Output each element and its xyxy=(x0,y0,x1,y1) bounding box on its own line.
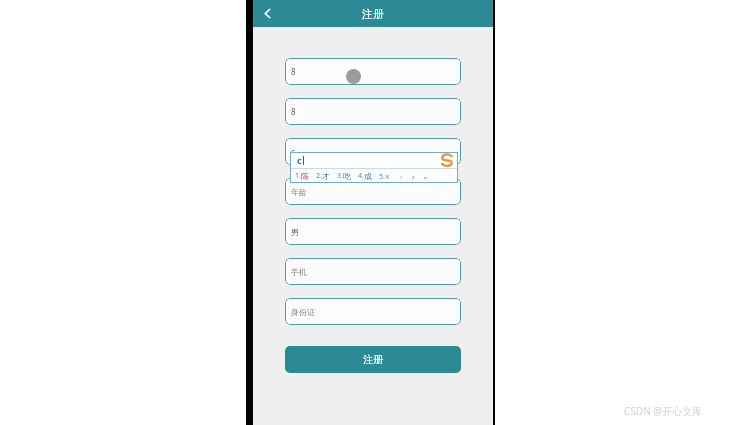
staticText: 8 xyxy=(291,66,296,77)
staticText: 1. xyxy=(295,171,301,181)
staticText: 5. xyxy=(379,172,385,182)
staticText: ⌄ xyxy=(422,172,429,181)
staticText: 2. xyxy=(316,171,322,181)
staticText: 3. xyxy=(337,171,343,181)
staticText: ‹ xyxy=(400,171,403,182)
staticText: CSDN @开心文库 xyxy=(624,404,703,418)
staticText: 陈 xyxy=(301,171,309,181)
staticText: 成 xyxy=(364,171,372,181)
button[interactable]: Previous candidates xyxy=(397,170,405,182)
button[interactable]: 年龄 xyxy=(285,178,461,205)
button[interactable]: 男 xyxy=(285,218,461,245)
button[interactable]: 2. xyxy=(316,171,330,181)
staticText: c xyxy=(297,154,302,166)
staticText: 注册 xyxy=(362,7,384,21)
staticText: 4. xyxy=(358,171,364,181)
button[interactable]: 1. xyxy=(295,171,309,181)
staticText: 男 xyxy=(291,227,299,237)
button[interactable]: Back xyxy=(253,0,281,27)
staticText: 年龄 xyxy=(291,187,307,197)
button[interactable]: 8 xyxy=(285,98,461,125)
button[interactable]: 8 xyxy=(285,58,461,85)
staticText: × xyxy=(385,171,390,182)
staticText: › xyxy=(412,171,415,182)
button[interactable]: 5. xyxy=(379,171,390,182)
staticText: 身份证 xyxy=(291,307,315,317)
button[interactable]: 注册 xyxy=(285,346,461,373)
button[interactable]: Expand candidates xyxy=(421,170,429,182)
staticText: 手机 xyxy=(291,267,307,277)
button[interactable]: c xyxy=(285,138,461,165)
button[interactable]: 3. xyxy=(337,171,351,181)
staticText: 才 xyxy=(322,171,330,181)
staticText: 8 xyxy=(291,106,296,117)
button[interactable]: Next candidates xyxy=(409,170,417,182)
staticText: 注册 xyxy=(363,353,383,366)
button[interactable]: 手机 xyxy=(285,258,461,285)
staticText: c xyxy=(291,146,295,157)
button[interactable]: 4. xyxy=(358,171,372,181)
button[interactable]: 身份证 xyxy=(285,298,461,325)
staticText: 吃 xyxy=(343,171,351,181)
